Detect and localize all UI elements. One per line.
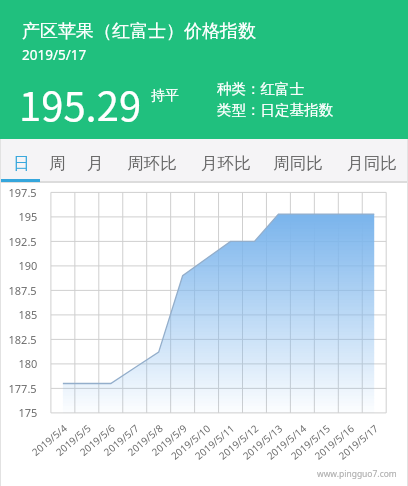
- staticText: 周: [49, 153, 66, 174]
- staticText: 周环比: [127, 153, 177, 174]
- staticText: 日: [13, 153, 30, 174]
- staticText: 产区苹果（红富士）价格指数: [22, 20, 256, 43]
- staticText: 持平: [151, 87, 179, 105]
- button[interactable]: 周同比: [268, 142, 328, 185]
- button[interactable]: 月: [80, 142, 110, 185]
- staticText: 周同比: [273, 153, 323, 174]
- button[interactable]: 月环比: [196, 142, 256, 185]
- staticText: 2019/5/17: [22, 46, 87, 64]
- staticText: 月同比: [347, 153, 397, 174]
- button[interactable]: 月同比: [342, 142, 402, 185]
- staticText: 195.29: [19, 75, 142, 133]
- button[interactable]: 日: [6, 142, 36, 185]
- staticText: 类型：日定基指数: [217, 101, 333, 119]
- button[interactable]: 周: [42, 142, 72, 185]
- staticText: 月环比: [201, 153, 251, 174]
- staticText: 种类：红富士: [217, 80, 304, 98]
- button[interactable]: 周环比: [122, 142, 182, 185]
- staticText: 月: [87, 153, 104, 174]
